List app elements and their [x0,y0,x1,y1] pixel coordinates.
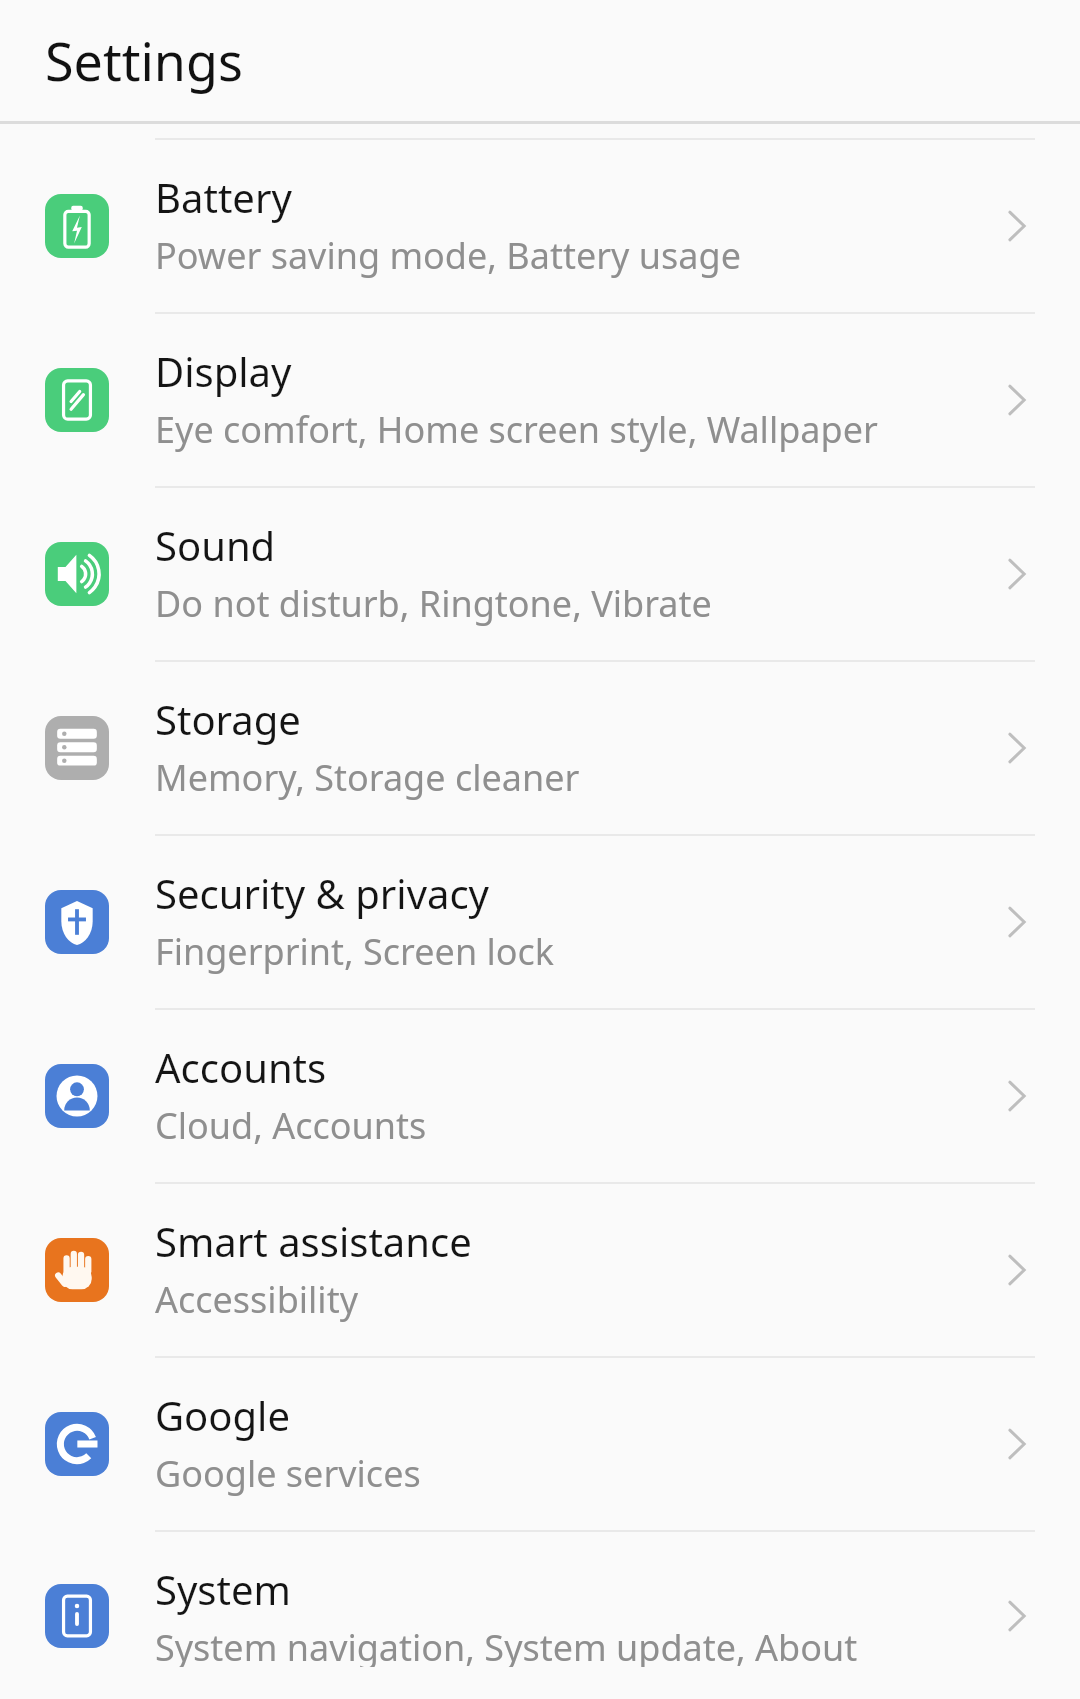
staticText: Google [155,1388,290,1442]
staticText: Power saving mode, Battery usage [155,231,741,280]
other: Open Accounts [994,1073,1040,1119]
button[interactable]: Display [0,314,1080,486]
button[interactable]: Google [0,1358,1080,1530]
staticText: Smart assistance [155,1214,472,1268]
staticText: Do not disturb, Ringtone, Vibrate [155,579,712,628]
button[interactable]: Smart assistance [0,1184,1080,1356]
staticText: Memory, Storage cleaner [155,753,580,802]
button[interactable]: System [0,1532,1080,1699]
button[interactable]: Storage [0,662,1080,834]
staticText: Display [155,344,292,398]
staticText: Accessibility [155,1275,359,1324]
other: Open Google [994,1421,1040,1467]
staticText: Fingerprint, Screen lock [155,927,555,976]
staticText: Google services [155,1449,421,1498]
staticText: Sound [155,518,276,572]
staticText: Settings [45,25,243,96]
staticText: Storage [155,692,301,746]
other: Open Display [994,377,1040,423]
other: Open Sound [994,551,1040,597]
button[interactable]: Battery [0,140,1080,312]
button[interactable]: Sound [0,488,1080,660]
other: Open Battery [994,203,1040,249]
other: Open Smart assistance [994,1247,1040,1293]
staticText: System navigation, System update, About … [155,1623,984,1667]
other: Open Storage [994,725,1040,771]
staticText: Accounts [155,1040,327,1094]
staticText: Battery [155,170,292,224]
button[interactable]: Accounts [0,1010,1080,1182]
staticText: System [155,1562,291,1616]
other: Open System [994,1593,1040,1639]
staticText: Cloud, Accounts [155,1101,427,1150]
staticText: Security & privacy [155,866,489,920]
other: Open Security & privacy [994,899,1040,945]
button[interactable]: Security & privacy [0,836,1080,1008]
staticText: Eye comfort, Home screen style, Wallpape… [155,405,878,454]
